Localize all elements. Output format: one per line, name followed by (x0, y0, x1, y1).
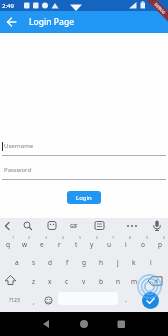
button[interactable]: n (109, 272, 127, 290)
button[interactable] (2, 273, 19, 289)
staticText: Login (76, 194, 92, 202)
staticText: r (58, 240, 61, 249)
staticText: 1 (12, 235, 15, 240)
staticText: ?123 (9, 297, 20, 304)
staticText: e (40, 240, 44, 249)
button[interactable] (142, 292, 159, 309)
staticText: 0 (163, 235, 166, 240)
staticText: DEBUG (153, 2, 167, 15)
button[interactable]: u (100, 235, 118, 253)
button[interactable]: k (125, 253, 143, 271)
button[interactable]: a (8, 253, 26, 271)
staticText: i (125, 240, 127, 249)
staticText: f (66, 258, 69, 267)
button[interactable]: d (41, 253, 59, 271)
staticText: Password (4, 166, 32, 174)
staticText: m (131, 277, 138, 286)
staticText: q (6, 240, 10, 249)
button[interactable]: v (75, 272, 93, 290)
button[interactable]: h (92, 253, 110, 271)
staticText: Login Page (29, 16, 75, 28)
staticText: Username (4, 142, 34, 150)
button[interactable]: f (58, 253, 76, 271)
button[interactable]: m (125, 272, 143, 290)
staticText: c (65, 277, 69, 286)
button[interactable]: y (83, 235, 101, 253)
button[interactable]: j (109, 253, 127, 271)
staticText: w (22, 240, 28, 249)
staticText: t (75, 240, 78, 249)
button[interactable]: e (33, 235, 51, 253)
button[interactable]: o (134, 235, 152, 253)
staticText: 2 (28, 235, 31, 240)
button[interactable]: q (0, 235, 17, 253)
button[interactable] (4, 14, 19, 30)
button[interactable] (76, 316, 92, 332)
staticText: y (90, 240, 94, 249)
staticText: 8 (129, 235, 132, 240)
staticText: k (132, 258, 136, 267)
staticText: . (125, 295, 127, 304)
button[interactable]: l (142, 253, 160, 271)
staticText: u (107, 240, 112, 249)
staticText: x (48, 277, 52, 286)
button[interactable]: i (117, 235, 135, 253)
staticText: 6 (96, 235, 99, 240)
button[interactable]: , (25, 292, 43, 310)
staticText: l (150, 258, 152, 267)
button[interactable]: t (67, 235, 85, 253)
button[interactable]: s (25, 253, 43, 271)
staticText: n (116, 277, 121, 286)
staticText: g (82, 258, 86, 267)
staticText: z (32, 277, 36, 286)
staticText: 5 (79, 235, 82, 240)
button[interactable]: . (117, 290, 135, 308)
button[interactable]: x (41, 272, 59, 290)
staticText: p (158, 240, 162, 249)
button[interactable]: w (16, 235, 34, 253)
staticText: 7 (112, 235, 115, 240)
button[interactable]: p (151, 235, 168, 253)
staticText: d (48, 258, 52, 267)
button[interactable]: r (50, 235, 68, 253)
button[interactable]: ?123 (2, 292, 26, 309)
button[interactable]: z (25, 272, 43, 290)
button[interactable] (113, 316, 129, 332)
button[interactable]: GIF (66, 219, 82, 233)
staticText: h (99, 258, 104, 267)
staticText: s (32, 258, 36, 267)
button[interactable]: Login (67, 191, 101, 204)
staticText: , (33, 297, 35, 306)
staticText: o (141, 240, 145, 249)
staticText: 4 (62, 235, 65, 240)
button[interactable]: c (58, 272, 76, 290)
staticText: 9 (146, 235, 149, 240)
button[interactable] (38, 316, 54, 332)
staticText: 2:49 (2, 2, 14, 10)
button[interactable]: b (92, 272, 110, 290)
button[interactable] (146, 273, 166, 289)
staticText: GIF (70, 223, 78, 229)
staticText: v (82, 277, 86, 286)
staticText: b (99, 277, 103, 286)
staticText: 3 (45, 235, 48, 240)
button[interactable]: g (75, 253, 93, 271)
staticText: j (117, 258, 119, 267)
staticText: a (15, 258, 19, 267)
